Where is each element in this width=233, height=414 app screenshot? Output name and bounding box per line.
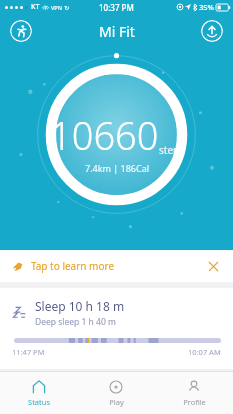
staticText: steps [159,143,184,157]
staticText: 10:07 AM [188,347,221,357]
staticText: 35% [199,2,214,12]
staticText: Tap to learn more [31,259,115,273]
staticText: 7.4km | 186Cal [85,162,150,174]
staticText: 11:47 PM [12,347,45,357]
staticText: KT [31,2,40,12]
button[interactable]: Share [201,20,223,42]
button[interactable]: Profile [155,372,233,414]
staticText: Play [109,397,124,407]
button[interactable]: Workout [10,20,32,42]
staticText: Status [28,397,50,407]
button[interactable]: Play [77,372,155,414]
staticText: ↻ [64,4,70,11]
staticText: 10:37 PM [99,2,134,13]
staticText: 10660 [50,109,159,161]
staticText: Profile [183,397,206,407]
button[interactable]: Status [0,372,77,414]
button[interactable]: Close [205,258,221,274]
staticText: Deep sleep 1 h 40 m [35,316,116,328]
button[interactable]: Tap to learn more [0,250,233,282]
staticText: VPN [51,4,62,11]
button[interactable]: Sleep 10 h 18 m [0,288,233,369]
staticText: Mi Fit [99,22,135,41]
staticText: Sleep 10 h 18 m [35,298,125,314]
